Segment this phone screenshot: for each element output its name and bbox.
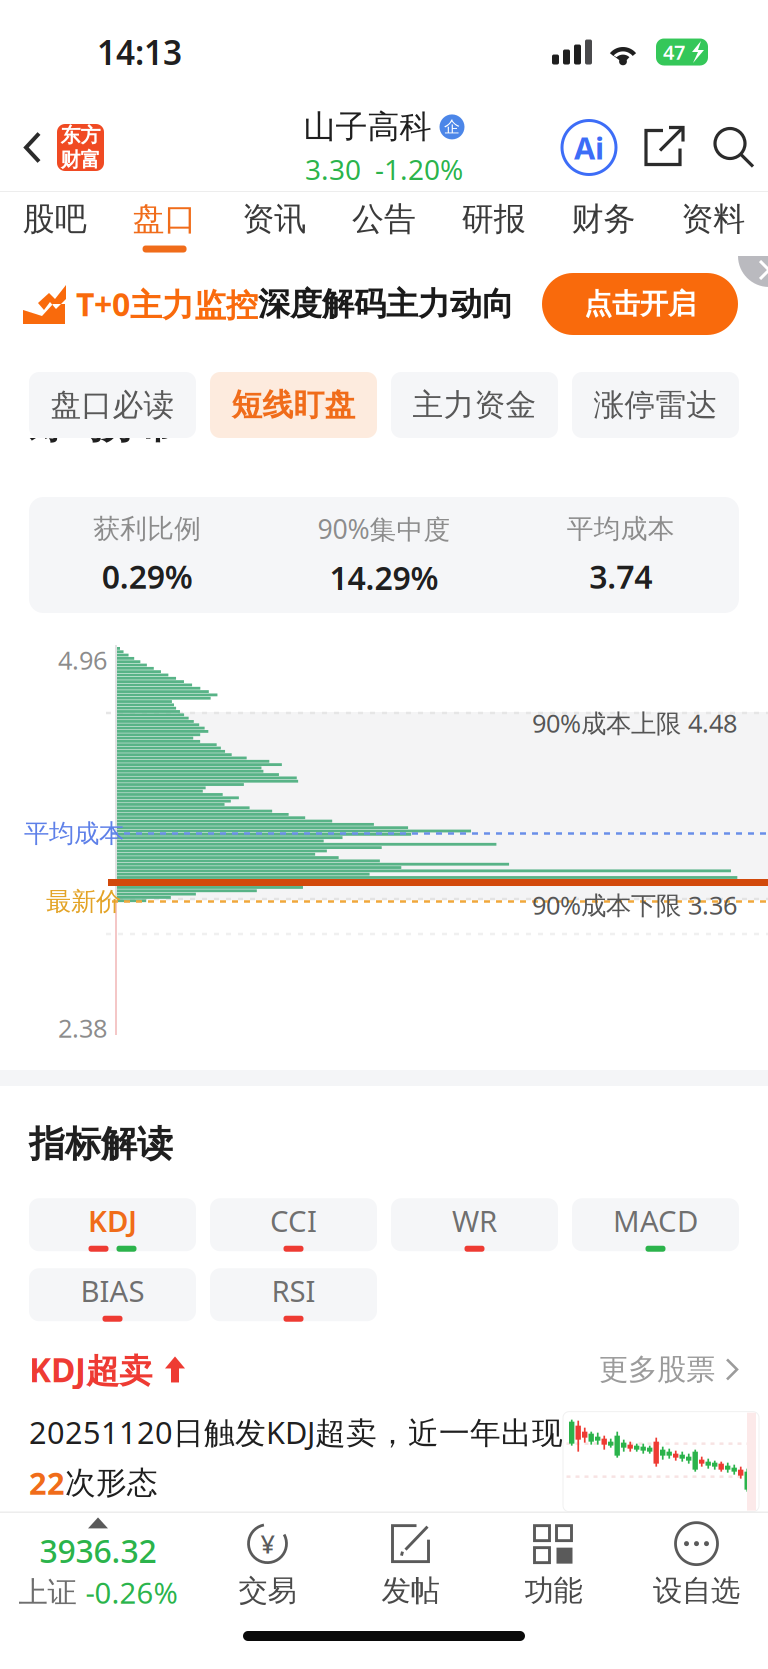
button[interactable]: 关闭 (738, 225, 768, 287)
staticText: 0.29% (102, 555, 193, 598)
staticText: 设自选 (653, 1573, 740, 1609)
staticText: 3.30 -1.20% (305, 151, 463, 188)
staticText: 山子高科 (303, 107, 431, 147)
staticText: 3936.32 (39, 1529, 156, 1572)
staticText: 2.38 (58, 1011, 107, 1045)
button[interactable]: 资料 (658, 192, 768, 256)
staticText: 90%集中度 (317, 511, 450, 546)
button[interactable]: 股吧 (0, 192, 110, 256)
button[interactable]: 3936.32 (0, 1513, 196, 1617)
button[interactable]: 搜索 (710, 123, 758, 171)
button[interactable]: RSI (210, 1268, 377, 1321)
staticText: 90%成本下限 3.36 (532, 888, 737, 922)
staticText: 涨停雷达 (593, 386, 717, 424)
staticText: 14:13 (97, 30, 182, 74)
staticText: 14.29% (329, 556, 438, 599)
staticText: MACD (613, 1201, 698, 1240)
staticText: 90%成本上限 4.48 (532, 706, 737, 740)
staticText: 最新价 (46, 886, 121, 917)
staticText: 财富 (60, 147, 100, 172)
staticText: 深度解码主力动向 (258, 284, 514, 324)
staticText: 资料 (681, 199, 745, 239)
staticText: 东方 (60, 123, 100, 147)
staticText: 企 (444, 117, 460, 137)
staticText: -0.26% (85, 1573, 177, 1612)
staticText: 3.74 (589, 555, 652, 598)
button[interactable]: 涨停雷达 (572, 372, 739, 438)
staticText: 盘口必读 (50, 386, 174, 424)
staticText: 指标解读 (29, 1122, 173, 1166)
staticText: 筹码分布 (29, 404, 173, 448)
staticText: ¥ (260, 1527, 274, 1560)
button[interactable]: MACD (572, 1198, 739, 1251)
button[interactable]: ¥ (196, 1513, 339, 1617)
button[interactable]: 短线盯盘 (210, 372, 377, 438)
staticText: Ai (574, 127, 604, 168)
staticText: CCI (270, 1201, 317, 1240)
staticText: 主力资金 (412, 386, 536, 424)
staticText: 22 (29, 1462, 65, 1503)
staticText: 功能 (524, 1573, 582, 1609)
staticText: 盘口 (133, 199, 197, 239)
staticText: 4.96 (58, 643, 107, 677)
staticText: 交易 (238, 1573, 296, 1609)
button[interactable]: 更多股票 (599, 1351, 739, 1387)
staticText: T+0主力监控 (76, 283, 258, 325)
staticText: 发帖 (381, 1573, 439, 1609)
staticText: 股吧 (23, 199, 87, 239)
button[interactable]: 盘口 (110, 192, 219, 256)
button[interactable]: 研报 (439, 192, 549, 256)
button[interactable]: 发帖 (339, 1513, 482, 1617)
button[interactable]: 公告 (329, 192, 439, 256)
button[interactable]: KDJ (29, 1198, 196, 1251)
staticText: WR (452, 1201, 497, 1240)
staticText: 获利比例 (93, 512, 201, 545)
staticText: KDJ (88, 1201, 137, 1240)
staticText: 更多股票 (599, 1351, 715, 1387)
button[interactable]: BIAS (29, 1268, 196, 1321)
button[interactable]: 主力资金 (391, 372, 558, 438)
button[interactable]: 返回 东方财富 (0, 103, 104, 191)
button[interactable]: WR (391, 1198, 558, 1251)
button[interactable]: 财务 (549, 192, 658, 256)
staticText: 财务 (571, 199, 635, 239)
button[interactable]: 点击开启 (542, 273, 738, 335)
staticText: 平均成本 (567, 512, 675, 545)
button[interactable]: 资讯 (219, 192, 329, 256)
staticText: 次形态 (65, 1464, 158, 1502)
staticText: KDJ超卖 (29, 1347, 152, 1392)
button[interactable]: 盘口必读 (29, 372, 196, 438)
staticText: 资讯 (242, 199, 306, 239)
button[interactable]: 分享 (640, 123, 688, 171)
staticText: 平均成本 (24, 818, 124, 849)
staticText: 点击开启 (584, 287, 696, 321)
staticText: BIAS (80, 1271, 144, 1310)
staticText: 研报 (462, 199, 526, 239)
staticText: 公告 (352, 199, 416, 239)
staticText: 上证 (18, 1574, 76, 1610)
button[interactable]: 设自选 (625, 1513, 768, 1617)
staticText: RSI (271, 1271, 315, 1310)
button[interactable]: 功能 (482, 1513, 625, 1617)
staticText: 47 (663, 39, 685, 65)
button[interactable]: AI 助手 (560, 118, 618, 176)
button[interactable]: CCI (210, 1198, 377, 1251)
staticText: 短线盯盘 (231, 386, 355, 424)
staticText: 20251120日触发KDJ超卖，近一年出现 (29, 1412, 563, 1452)
